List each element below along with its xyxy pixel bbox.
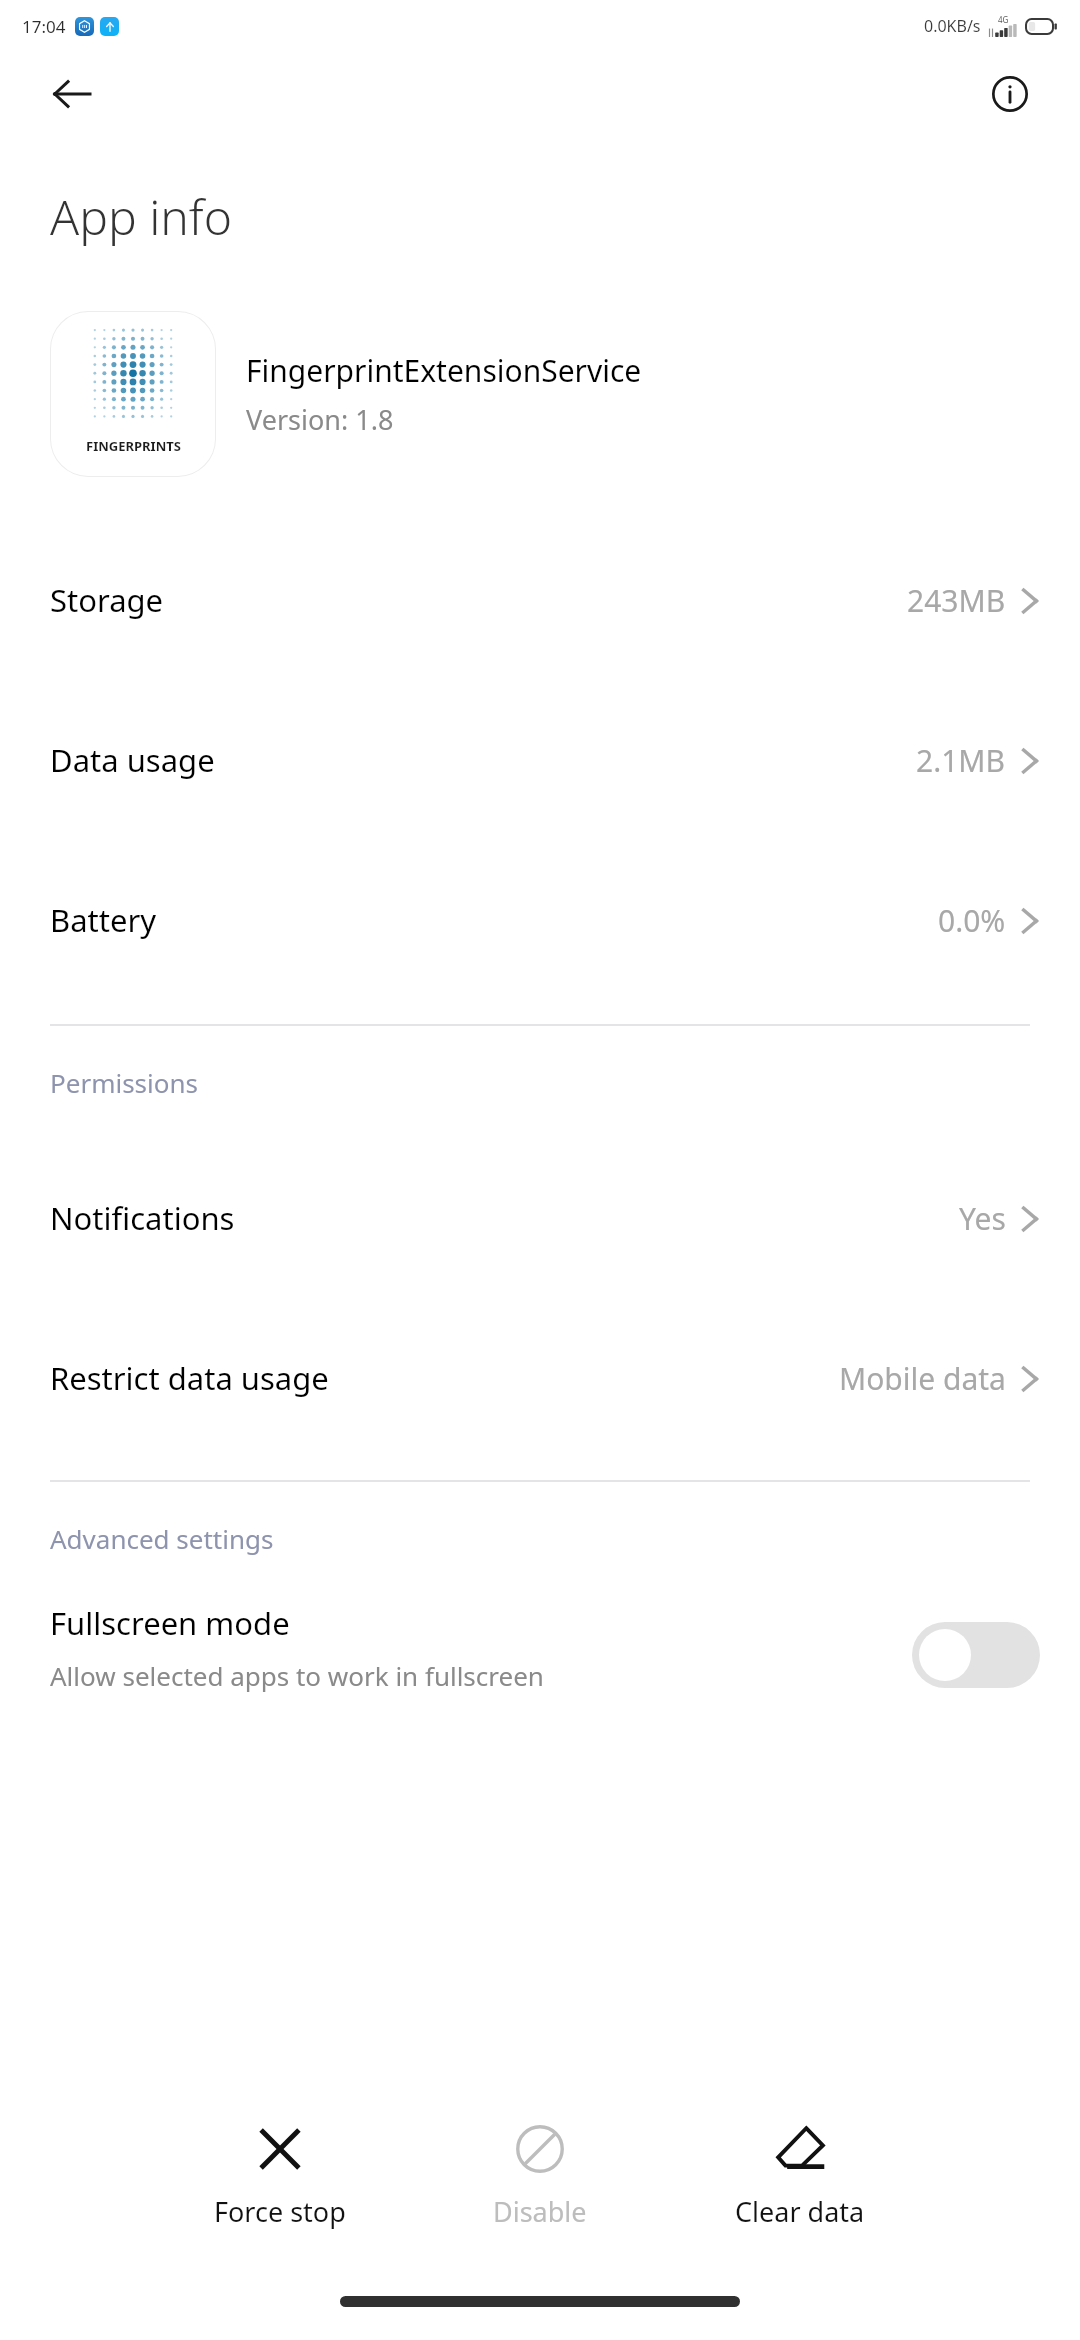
staticText: Clear data <box>735 2193 865 2230</box>
staticText: 17:04 <box>22 15 66 38</box>
button[interactable]: Battery <box>0 840 1080 1000</box>
staticText: 0.0% <box>938 900 1006 941</box>
staticText: Storage <box>50 579 164 621</box>
staticText: Mobile data <box>839 1358 1006 1399</box>
button[interactable]: App details info <box>984 68 1036 120</box>
button[interactable]: FINGERPRINTS <box>0 296 1080 492</box>
button[interactable]: Data usage <box>0 680 1080 840</box>
button[interactable]: Fullscreen mode <box>0 1594 1080 1764</box>
staticText: Restrict data usage <box>50 1357 329 1399</box>
staticText: Permissions <box>50 1065 199 1100</box>
staticText: FingerprintExtensionService <box>246 350 642 391</box>
button[interactable]: Fullscreen mode toggle, off <box>912 1622 1040 1688</box>
staticText: 0.0KB/s <box>924 15 981 37</box>
staticText: Fullscreen mode <box>50 1602 290 1644</box>
staticText: Yes <box>959 1198 1006 1239</box>
button[interactable]: Back <box>46 68 98 120</box>
staticText: FINGERPRINTS <box>86 437 181 455</box>
staticText: Version: 1.8 <box>246 401 394 438</box>
button[interactable]: Storage <box>0 520 1080 680</box>
staticText: Battery <box>50 899 157 941</box>
staticText: 4G <box>998 14 1009 25</box>
staticText: Disable <box>493 2193 587 2230</box>
staticText: 2.1MB <box>916 740 1006 781</box>
staticText: Notifications <box>50 1197 235 1239</box>
button[interactable]: Disable <box>440 2090 640 2262</box>
staticText: App info <box>50 184 233 249</box>
button[interactable]: Force stop <box>180 2090 380 2262</box>
staticText: Allow selected apps to work in fullscree… <box>50 1658 544 1693</box>
staticText: Data usage <box>50 739 215 781</box>
button[interactable]: Clear data <box>700 2090 900 2262</box>
button[interactable]: Notifications <box>0 1138 1080 1298</box>
staticText: 243MB <box>907 580 1006 621</box>
button[interactable]: Restrict data usage <box>0 1298 1080 1458</box>
staticText: Advanced settings <box>50 1521 274 1556</box>
staticText: Force stop <box>214 2193 346 2230</box>
